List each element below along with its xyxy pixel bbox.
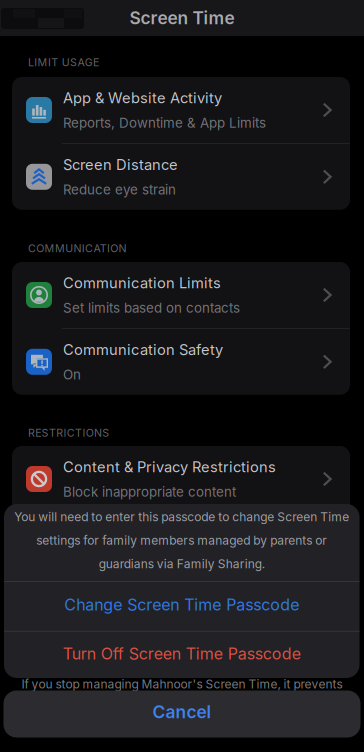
button[interactable]: Turn Off Screen Time Passcode bbox=[4, 631, 359, 677]
button[interactable]: Communication Limits bbox=[12, 262, 350, 328]
button[interactable]: Content & Privacy Restrictions bbox=[12, 446, 350, 512]
staticText: Communication Limits bbox=[63, 274, 221, 291]
button[interactable]: Screen Distance bbox=[12, 144, 350, 210]
staticText: RESTRICTIONS bbox=[28, 426, 109, 439]
button[interactable]: App & Website Activity bbox=[12, 77, 350, 143]
staticText: App & Website Activity bbox=[63, 89, 222, 106]
staticText: Screen Time bbox=[129, 8, 234, 28]
button[interactable]: Change Screen Time Passcode bbox=[4, 580, 359, 629]
staticText: Cancel bbox=[152, 702, 211, 722]
staticText: settings for family members managed by p… bbox=[36, 533, 327, 547]
button[interactable] bbox=[1, 8, 84, 29]
staticText: You will need to enter this passcode to … bbox=[14, 510, 349, 524]
staticText: Turn Off Screen Time Passcode bbox=[63, 644, 301, 663]
staticText: Block inappropriate content bbox=[63, 484, 236, 500]
staticText: LIMIT USAGE bbox=[28, 56, 99, 69]
staticText: guardians via Family Sharing. bbox=[99, 557, 265, 571]
staticText: COMMUNICATION bbox=[28, 242, 127, 255]
staticText: Communication Safety bbox=[63, 341, 223, 358]
staticText: On bbox=[63, 367, 81, 382]
button[interactable]: Cancel bbox=[3, 690, 360, 737]
staticText: Reduce eye strain bbox=[63, 182, 176, 197]
staticText: Change Screen Time Passcode bbox=[64, 595, 299, 614]
staticText: Screen Distance bbox=[63, 156, 178, 173]
staticText: Set limits based on contacts bbox=[63, 300, 240, 316]
staticText: Reports, Downtime & App Limits bbox=[63, 115, 266, 131]
staticText: If you stop managing Mahnoor's Screen Ti… bbox=[21, 677, 342, 691]
button[interactable]: Communication Safety bbox=[12, 329, 350, 395]
staticText: Content & Privacy Restrictions bbox=[63, 458, 276, 475]
